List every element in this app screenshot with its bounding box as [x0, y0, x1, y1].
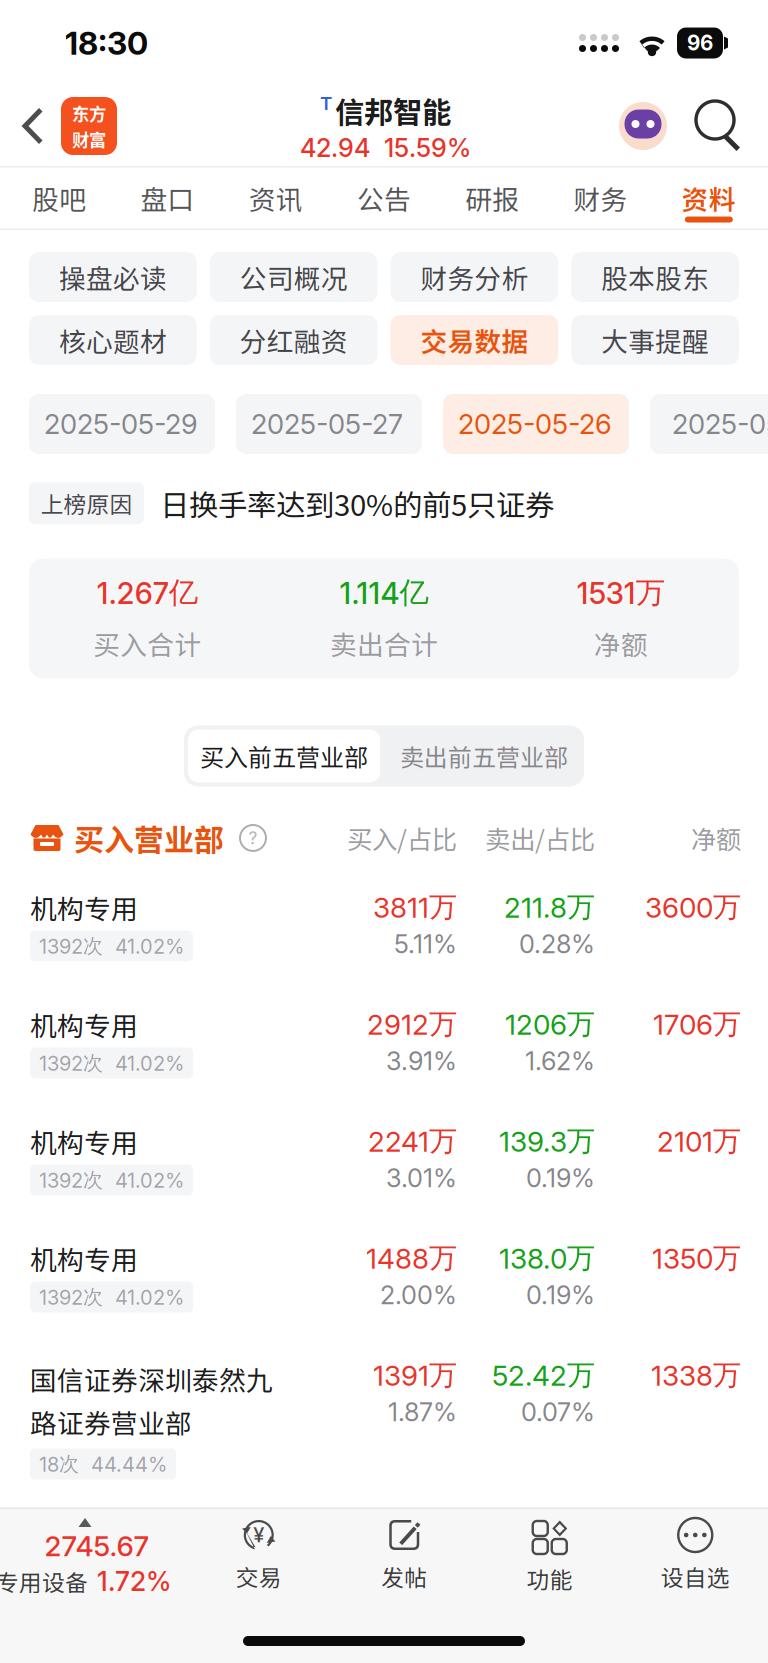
staticText: 5.11% — [394, 929, 457, 959]
button[interactable]: 搜索 — [670, 101, 768, 151]
staticText: 211.8万 — [504, 889, 595, 925]
staticText: 日换手率达到30%的前5只证券 — [160, 482, 554, 524]
button[interactable]: 2025-05-27 — [236, 394, 422, 454]
button[interactable]: 交易数据 — [390, 315, 558, 365]
staticText: 2.00% — [380, 1280, 457, 1310]
staticText: 18次 44.44% — [39, 1451, 167, 1477]
button[interactable]: 返回 — [0, 86, 129, 166]
button[interactable]: 功能 — [477, 1518, 622, 1596]
staticText: 1.87% — [388, 1397, 457, 1427]
button[interactable]: 智能助手 — [616, 99, 670, 153]
staticText: 资料 — [682, 179, 736, 217]
staticText: 分红融资 — [240, 321, 348, 359]
button[interactable]: 机构专用 — [0, 1123, 768, 1240]
staticText: 3.91% — [386, 1046, 457, 1076]
button[interactable]: 研报 — [438, 167, 546, 228]
staticText: 2912万 — [367, 1006, 457, 1042]
staticText: 机构专用 — [30, 1239, 138, 1278]
button[interactable]: 盘口 — [113, 167, 222, 228]
staticText: 1.267亿 — [97, 574, 198, 611]
button[interactable]: 国信证券深圳泰然九 — [0, 1357, 768, 1502]
staticText: 1391万 — [373, 1357, 457, 1393]
button[interactable]: 资料 — [655, 167, 763, 228]
staticText: 机构专用 — [30, 1122, 138, 1161]
button[interactable]: 公司概况 — [210, 252, 378, 302]
staticText: 财务 — [574, 179, 628, 217]
button[interactable]: 设自选 — [622, 1518, 768, 1596]
staticText: T — [320, 92, 332, 114]
staticText: 净额 — [594, 624, 648, 663]
staticText: 3.01% — [386, 1163, 457, 1193]
staticText: 信邦智能 — [335, 89, 451, 131]
staticText: 1.62% — [525, 1046, 595, 1076]
staticText: ¥ — [253, 1523, 264, 1547]
staticText: 卖出/占比 — [485, 820, 595, 856]
button[interactable]: 2025-05- — [650, 394, 768, 454]
staticText: 路证券营业部 — [30, 1403, 192, 1441]
button[interactable]: 大事提醒 — [571, 315, 739, 365]
staticText: 设自选 — [661, 1560, 730, 1593]
button[interactable]: 股本股东 — [571, 252, 739, 302]
staticText: 42.94 15.59% — [300, 132, 471, 163]
staticText: 卖出合计 — [330, 624, 438, 663]
staticText: 139.3万 — [499, 1123, 595, 1159]
button[interactable]: 买入前五营业部 — [184, 725, 384, 786]
button[interactable]: 机构专用 — [0, 1240, 768, 1357]
staticText: ? — [248, 827, 257, 848]
button[interactable]: 操盘必读 — [29, 252, 197, 302]
staticText: 1706万 — [653, 1006, 741, 1042]
staticText: 1392次 41.02% — [39, 933, 184, 959]
staticText: 2025-05-26 — [458, 407, 612, 441]
staticText: 国信证券深圳泰然九 — [30, 1360, 273, 1398]
staticText: 大事提醒 — [601, 321, 709, 359]
staticText: 交易数据 — [420, 321, 528, 359]
staticText: 净额 — [691, 820, 741, 856]
staticText: 2025-05- — [672, 407, 768, 441]
staticText: 买入营业部 — [74, 816, 224, 860]
staticText: 1488万 — [366, 1240, 457, 1276]
button[interactable]: 公告 — [330, 167, 438, 228]
staticText: 1392次 41.02% — [39, 1284, 184, 1310]
staticText: 买入前五营业部 — [200, 739, 368, 773]
staticText: 上榜原因 — [40, 487, 132, 520]
staticText: 机构专用 — [30, 1005, 138, 1044]
button[interactable]: 发帖 — [331, 1518, 477, 1596]
staticText: 52.42万 — [492, 1357, 595, 1393]
button[interactable]: 股吧 — [5, 167, 113, 228]
staticText: 股本股东 — [601, 258, 709, 296]
staticText: 138.0万 — [499, 1240, 595, 1276]
button[interactable]: 指数 2745.67 专用设备 — [0, 1518, 186, 1596]
button[interactable]: 财务 — [546, 167, 655, 228]
staticText: 财富 — [72, 126, 106, 152]
staticText: 0.19% — [526, 1163, 595, 1193]
staticText: 操盘必读 — [59, 258, 167, 296]
staticText: 1206万 — [505, 1006, 595, 1042]
button[interactable]: 机构专用 — [0, 1006, 768, 1123]
button[interactable]: 财务分析 — [390, 252, 558, 302]
staticText: 1.72% — [97, 1565, 171, 1597]
button[interactable]: ¥ — [186, 1518, 331, 1596]
button[interactable]: 机构专用 — [0, 889, 768, 1006]
button[interactable]: 分红融资 — [210, 315, 378, 365]
button[interactable]: 核心题材 — [29, 315, 197, 365]
staticText: 机构专用 — [30, 888, 138, 927]
staticText: 公司概况 — [240, 258, 348, 296]
staticText: 3811万 — [373, 889, 457, 925]
staticText: 2101万 — [657, 1123, 741, 1159]
staticText: 卖出前五营业部 — [400, 739, 568, 773]
button[interactable]: 2025-05-26 — [443, 394, 629, 454]
button[interactable]: 2025-05-29 — [29, 394, 215, 454]
staticText: 1392次 41.02% — [39, 1167, 184, 1193]
staticText: 买入合计 — [93, 624, 201, 663]
staticText: 财务分析 — [420, 258, 528, 296]
button[interactable]: 资讯 — [222, 167, 330, 228]
staticText: 0.07% — [521, 1397, 595, 1427]
staticText: 0.28% — [519, 929, 595, 959]
staticText: 买入/占比 — [347, 820, 457, 856]
staticText: 1350万 — [652, 1240, 741, 1276]
staticText: 2025-05-27 — [251, 407, 403, 441]
staticText: 3600万 — [645, 889, 741, 925]
staticText: 2241万 — [368, 1123, 457, 1159]
staticText: 1392次 41.02% — [39, 1050, 184, 1076]
button[interactable]: 卖出前五营业部 — [384, 725, 584, 786]
